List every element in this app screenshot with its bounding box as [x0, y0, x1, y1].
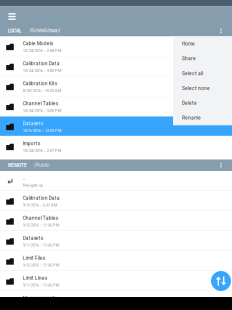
button[interactable]: Imports — [0, 136, 232, 156]
staticText: /RohdeSchwarz — [29, 28, 60, 33]
button[interactable]: .. — [0, 171, 232, 190]
staticText: Datasets — [23, 235, 43, 241]
staticText: 10/5/2016 :: 12:03 PM — [23, 128, 61, 133]
staticText: Channel Tables — [23, 215, 58, 221]
button[interactable]: Calibration Data — [0, 56, 232, 76]
button[interactable]: Select none — [173, 81, 232, 96]
staticText: 9/9/2016 :: 6:31 AM — [23, 203, 57, 207]
staticText: 8/30/2016 :: 10:52 AM — [23, 88, 61, 93]
button[interactable]: Select all — [173, 66, 232, 81]
staticText: /Public — [34, 163, 49, 168]
button[interactable]: Menu — [0, 6, 19, 26]
staticText: Calibration Kits — [23, 81, 57, 86]
button[interactable]: Channel Tables — [0, 96, 232, 116]
staticText: Rename — [182, 115, 201, 121]
staticText: Cable Models — [23, 41, 53, 46]
staticText: Limit Lines — [23, 275, 47, 281]
button[interactable]: Datasets — [0, 231, 232, 250]
staticText: Limit Files — [23, 255, 45, 261]
button[interactable]: Limit Files — [0, 251, 232, 270]
button[interactable]: Section options — [215, 159, 232, 171]
staticText: Navigate up — [23, 183, 43, 187]
staticText: REMOTE — [8, 162, 27, 168]
staticText: Share — [182, 56, 196, 61]
button[interactable]: Calibration Data — [0, 191, 232, 210]
staticText: 10/24/2016 :: 2:58 PM — [23, 48, 61, 53]
staticText: Calibration Data — [23, 61, 60, 66]
button[interactable]: Share — [173, 51, 232, 66]
staticText: Measurements — [23, 295, 57, 301]
button[interactable]: Calibration Kits — [0, 76, 232, 96]
button[interactable]: Rename — [173, 110, 232, 125]
button[interactable]: Channel Tables — [0, 211, 232, 230]
staticText: 10/24/2016 :: 2:07 PM — [23, 148, 61, 153]
staticText: Home — [182, 41, 195, 47]
staticText: 9/5/2016 :: 11:06 PM — [23, 223, 59, 227]
button[interactable]: Cable Models — [0, 36, 232, 56]
staticText: Select none — [182, 85, 210, 91]
button[interactable]: Limit Lines — [0, 271, 232, 290]
staticText: Imports — [23, 141, 40, 146]
button[interactable]: Datasets — [0, 116, 232, 136]
button[interactable]: Delete — [173, 96, 232, 110]
staticText: 10/24/2016 :: 3:00 PM — [23, 108, 61, 113]
staticText: Channel Tables — [23, 101, 58, 106]
staticText: 9/1/2016 :: 11:06 PM — [23, 243, 59, 247]
staticText: 9/1/2016 :: 11:06 PM — [23, 283, 59, 287]
staticText: .. — [23, 175, 25, 181]
button[interactable]: Measurements — [0, 291, 232, 310]
staticText: Delete — [182, 100, 197, 106]
button[interactable]: Transfer files — [211, 271, 231, 291]
button[interactable]: Section options — [215, 25, 232, 36]
staticText: Calibration Data — [23, 195, 60, 201]
staticText: Select all — [182, 71, 203, 76]
staticText: 10/24/2016 :: 3:00 PM — [23, 68, 61, 73]
staticText: LOCAL — [8, 28, 22, 33]
staticText: 9/5/2016 :: 11:06 PM — [23, 263, 59, 267]
button[interactable]: Home — [173, 36, 232, 51]
staticText: Datasets — [23, 121, 43, 126]
